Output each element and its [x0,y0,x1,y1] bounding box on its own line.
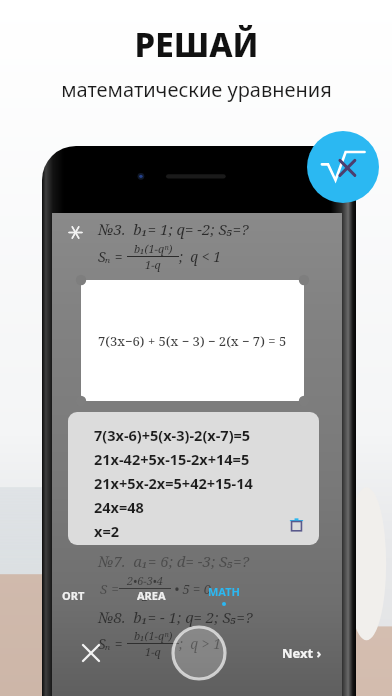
staticText: 21x+5x-2x=5+42+15-14 [94,473,253,493]
button[interactable]: Flash [64,221,86,243]
staticText: x=2 [94,521,119,541]
staticText: 7(3x−6) + 5(x − 3) − 2(x − 7) = 5 [98,332,287,350]
staticText: 2 [142,589,149,604]
staticText: ; q < 1 [179,247,222,266]
staticText: ; q > 1 [179,634,222,653]
staticText: №8. b₁= - 1; q= 2; S₅=? [98,607,253,627]
button[interactable]: Close [74,636,108,670]
staticText: S [100,580,108,598]
staticText: РЕШАЙ [134,22,259,67]
staticText: Sₙ = [98,634,127,653]
staticText: 21x-42+5x-15-2x+14=5 [94,449,250,469]
staticText: 1−q [145,257,161,272]
button[interactable]: Next › [276,639,328,667]
button[interactable]: ORT [56,585,91,606]
staticText: 7(3x-6)+5(x-3)-2(x-7)=5 [94,425,251,445]
staticText: математические уравнения [61,76,332,103]
staticText: 2•6−3•4 [127,573,163,588]
staticText: Next › [282,644,322,662]
button[interactable]: Math Solver app icon [307,131,379,203]
staticText: 1−q [145,644,161,659]
staticText: Sₙ = [98,247,127,266]
staticText: №7. a₁= 6; d= -3; S₅=? [98,551,250,571]
button[interactable]: 7(3x−6) + 5(x − 3) − 2(x − 7) = 5 [81,280,304,401]
button[interactable]: Delete [283,511,309,537]
staticText: b₁(1−qⁿ) [134,241,173,256]
staticText: = [108,580,119,598]
staticText: AREA [137,588,166,603]
staticText: b₁(1−qⁿ) [134,628,173,643]
button[interactable]: 7(3x-6)+5(x-3)-2(x-7)=5 [68,412,319,545]
button[interactable]: AREA [131,585,172,606]
staticText: ORT [62,588,85,603]
button[interactable]: Shutter [170,624,228,682]
staticText: MATH [208,584,240,599]
staticText: • 5 = 0 [171,580,212,598]
staticText: 24x=48 [94,497,144,517]
staticText: №3. b₁= 1; q= -2; S₅=? [98,219,249,239]
button[interactable]: MATH [202,581,246,609]
